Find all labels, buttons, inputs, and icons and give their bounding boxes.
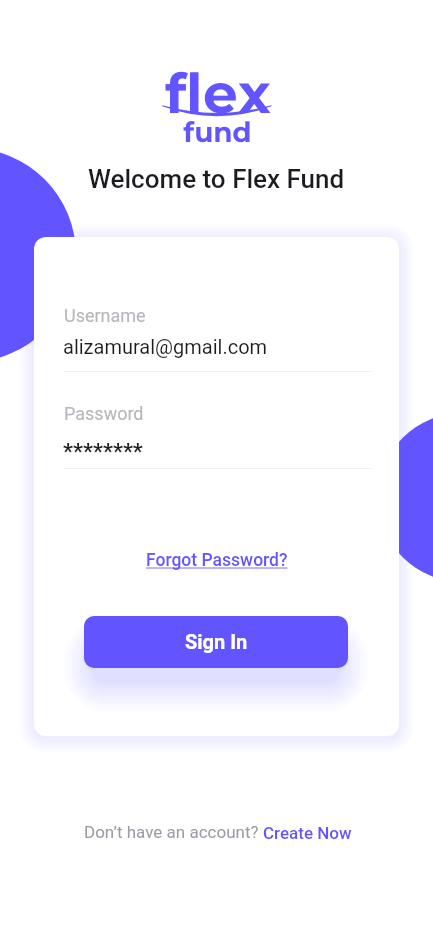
staticText: Create Now [263,823,352,843]
staticText: Forgot Password? [146,550,288,571]
staticText: Username [64,305,146,326]
button[interactable]: Sign In [84,616,348,668]
staticText: Welcome to Flex Fund [88,164,345,194]
button[interactable]: Create Now [261,820,353,844]
staticText: ******** [63,439,143,465]
staticText: Password [64,403,144,424]
staticText: alizamural@gmail.com [63,335,268,358]
button[interactable]: Forgot Password? [143,543,291,577]
staticText: Don’t have an account? [84,822,263,842]
staticText: Sign In [185,630,248,653]
